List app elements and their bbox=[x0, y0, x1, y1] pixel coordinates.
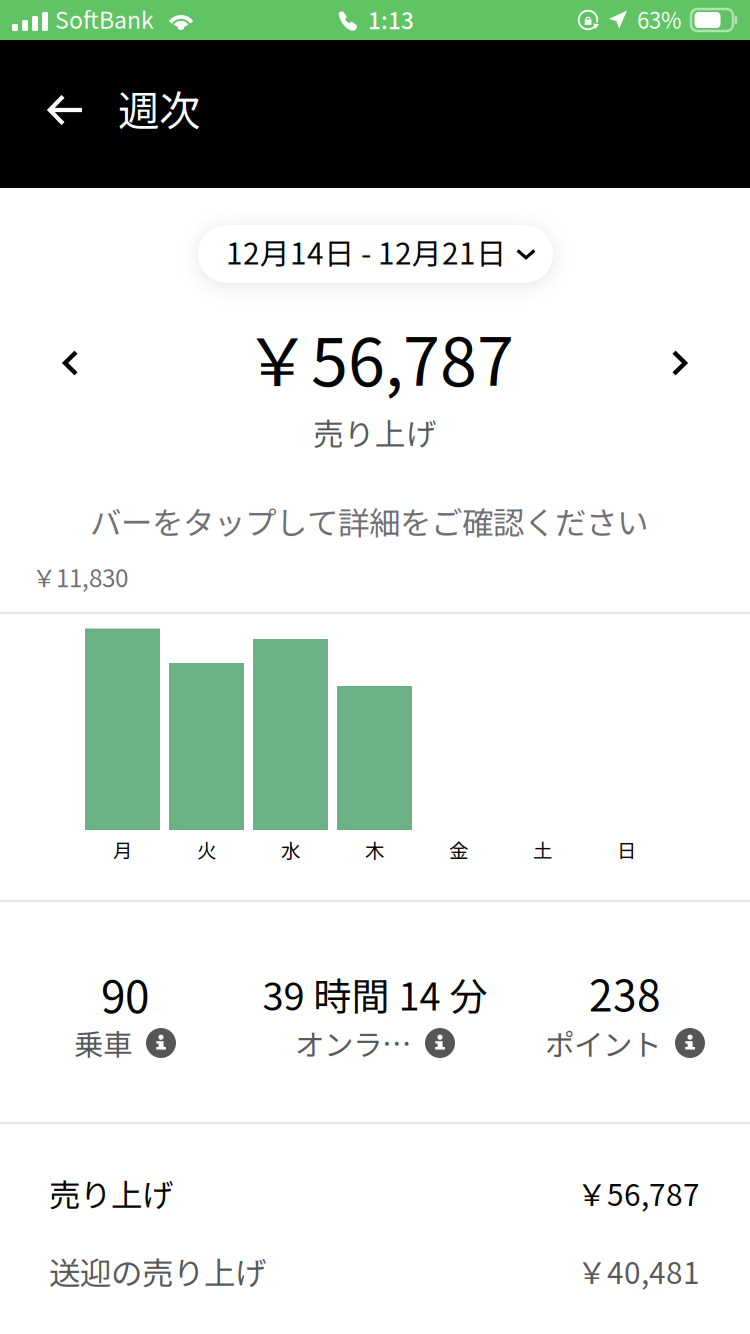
staticText: 39 時間 14 分 bbox=[262, 966, 487, 1021]
staticText: ￥56,787 bbox=[244, 309, 514, 405]
button[interactable]: 木 bbox=[337, 628, 412, 830]
button[interactable]: 送迎の売り上げ bbox=[0, 1246, 750, 1296]
staticText: 1:13 bbox=[368, 3, 414, 36]
button[interactable]: 次の週 bbox=[634, 323, 724, 403]
button[interactable]: 火 bbox=[169, 628, 244, 830]
button[interactable]: 前の週 bbox=[26, 323, 116, 403]
staticText: 週次 bbox=[118, 78, 200, 138]
staticText: SoftBank bbox=[55, 2, 154, 35]
button[interactable]: 売り上げ bbox=[0, 1168, 750, 1218]
staticText: ￥40,481 bbox=[577, 1249, 700, 1293]
staticText: ￥11,830 bbox=[32, 559, 128, 594]
staticText: ￥56,787 bbox=[577, 1171, 700, 1215]
button[interactable]: 水 bbox=[253, 628, 328, 830]
staticText: 63% bbox=[637, 3, 682, 35]
button[interactable]: 戻る bbox=[23, 66, 109, 154]
staticText: 金 bbox=[449, 835, 468, 864]
button[interactable]: 12月14日 - 12月21日 bbox=[198, 225, 553, 283]
button[interactable]: 238 bbox=[500, 958, 750, 1108]
staticText: 送迎の売り上げ bbox=[49, 1248, 266, 1294]
button[interactable]: 月 bbox=[85, 628, 160, 830]
staticText: 乗車 bbox=[74, 1022, 132, 1064]
staticText: 売り上げ bbox=[313, 410, 437, 454]
button[interactable]: 39 時間 14 分 bbox=[250, 959, 500, 1109]
staticText: 月 bbox=[113, 835, 132, 864]
staticText: オンラ… bbox=[295, 1022, 411, 1064]
staticText: 火 bbox=[197, 835, 216, 864]
button[interactable]: 90 bbox=[0, 959, 250, 1109]
staticText: 木 bbox=[365, 835, 384, 864]
staticText: 土 bbox=[533, 835, 552, 864]
staticText: ポイント bbox=[545, 1022, 661, 1064]
staticText: 238 bbox=[589, 962, 661, 1024]
staticText: 水 bbox=[281, 835, 300, 864]
staticText: バーをタップして詳細をご確認ください bbox=[90, 498, 648, 544]
staticText: 売り上げ bbox=[49, 1170, 173, 1216]
staticText: 90 bbox=[101, 962, 149, 1026]
staticText: 12月14日 - 12月21日 bbox=[226, 230, 506, 273]
staticText: 日 bbox=[617, 835, 636, 864]
